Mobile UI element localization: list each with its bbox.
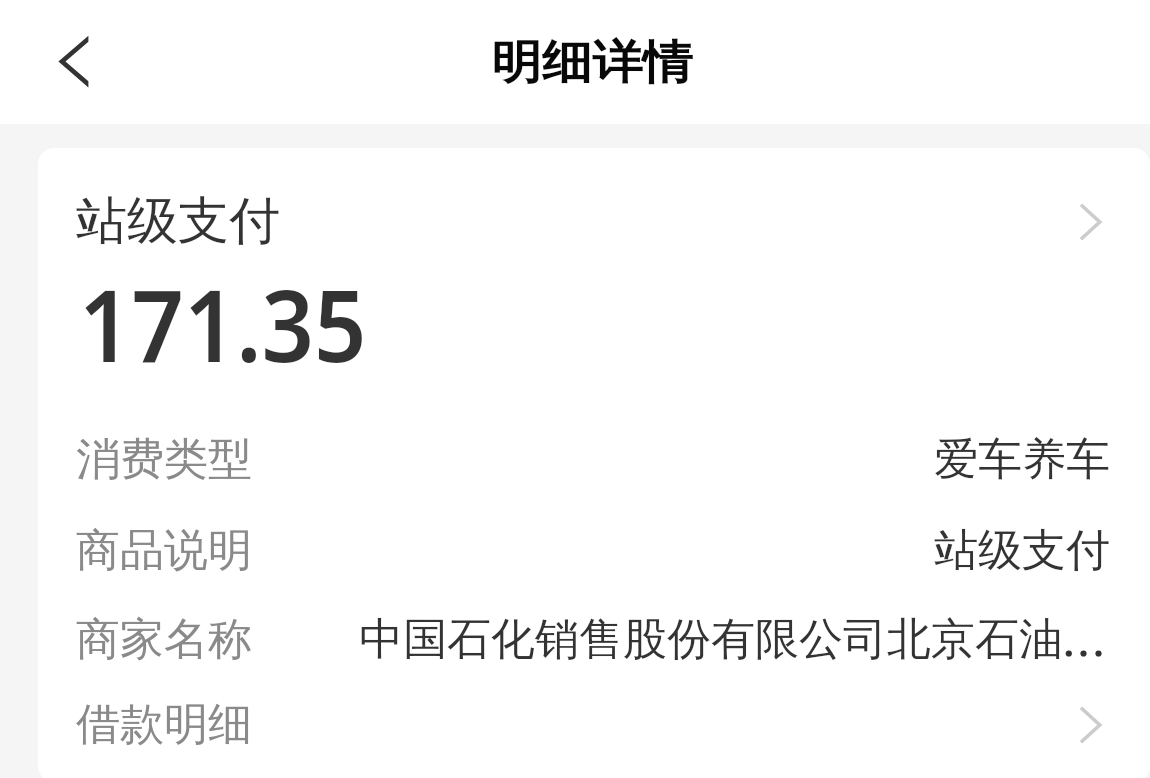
staticText: 借款明细 <box>76 697 252 752</box>
staticText: 站级支付 <box>76 189 280 253</box>
staticText: 商品说明 <box>76 523 252 578</box>
staticText: 爱车养车 <box>268 432 1110 487</box>
button[interactable]: 站级支付 <box>38 188 1150 254</box>
staticText: 消费类型 <box>76 432 252 487</box>
button[interactable]: Back <box>0 0 112 124</box>
staticText: 商家名称 <box>76 612 252 667</box>
button[interactable]: 借款明细 <box>38 679 1150 769</box>
staticText: 站级支付 <box>268 523 1110 578</box>
staticText: 明细详情 <box>491 34 692 92</box>
staticText: 171.35 <box>79 256 367 391</box>
staticText: 中国石化销售股份有限公司北京石油 <box>359 612 1063 667</box>
